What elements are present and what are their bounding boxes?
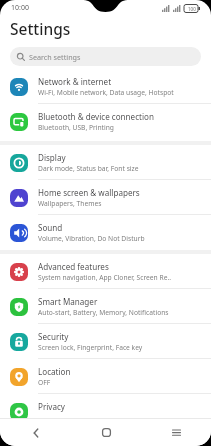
staticText: System navigation, App Cloner, Screen Re… [38,273,171,282]
staticText: Screen lock, Fingerprint, Face key [38,343,143,352]
staticText: Security [38,331,69,342]
staticText: Bluetooth, USB, Printing [38,123,114,132]
button[interactable]: Home screen & wallpapers [0,180,211,215]
button[interactable] [71,419,141,446]
staticText: Advanced features [38,261,109,272]
button[interactable]: Sound [0,215,211,250]
staticText: Volume, Vibration, Do Not Disturb [38,234,145,243]
staticText: Wallpapers, Themes [38,199,102,208]
staticText: Smart Manager [38,296,98,307]
staticText: 100 [188,6,196,12]
staticText: Settings [10,18,71,39]
staticText: Home screen & wallpapers [38,187,140,198]
staticText: Wi-Fi, Mobile network, Data usage, Hotsp… [38,88,174,97]
button[interactable]: Bluetooth & device connection [0,104,211,139]
staticText: Search settings [29,52,81,62]
staticText: OFF [38,378,51,387]
button[interactable] [141,419,211,446]
staticText: Dark mode, Status bar, Font size [38,164,139,173]
staticText: Network & internet [38,76,112,87]
button[interactable]: Privacy [0,394,211,429]
button[interactable]: Security [0,324,211,359]
staticText: Bluetooth & device connection [38,111,154,122]
button[interactable] [0,419,71,446]
button[interactable]: Network & internet [0,69,211,104]
button[interactable]: Location [0,359,211,394]
button[interactable]: Search settings [10,47,201,66]
staticText: Sound [38,222,63,233]
button[interactable]: Advanced features [0,254,211,289]
staticText: Privacy [38,401,65,412]
staticText: Location [38,366,71,377]
button[interactable]: Smart Manager [0,289,211,324]
staticText: Auto-start, Battery, Memory, Notificatio… [38,308,169,317]
staticText: 10:00 [11,3,29,13]
staticText: Display [38,152,66,163]
button[interactable]: Display [0,145,211,180]
